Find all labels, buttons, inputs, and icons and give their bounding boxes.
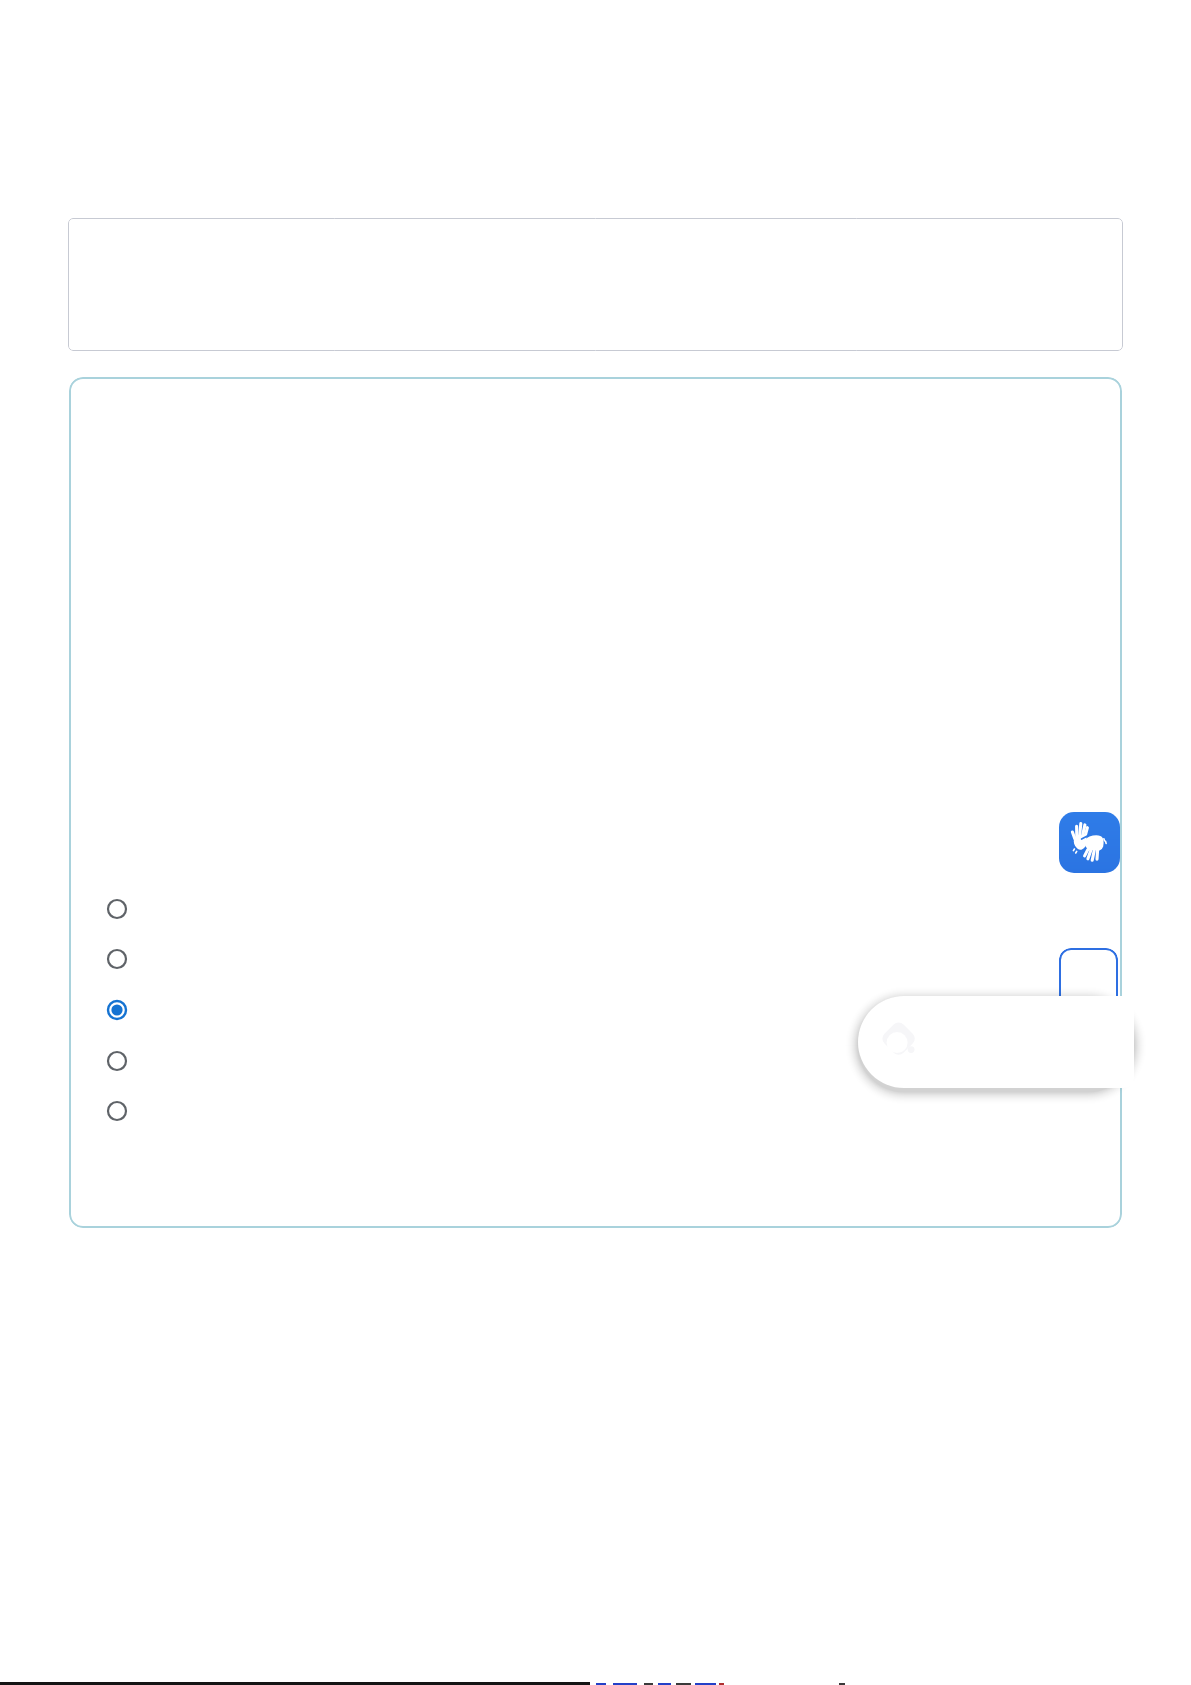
button[interactable]: [1059, 948, 1118, 1063]
button[interactable]: [68, 218, 1123, 351]
button[interactable]: [1059, 812, 1120, 873]
button[interactable]: [858, 996, 1134, 1088]
button[interactable]: [97, 1041, 137, 1081]
button[interactable]: [97, 939, 137, 979]
button[interactable]: [97, 889, 137, 929]
button[interactable]: [97, 1091, 137, 1131]
button[interactable]: [97, 990, 137, 1030]
